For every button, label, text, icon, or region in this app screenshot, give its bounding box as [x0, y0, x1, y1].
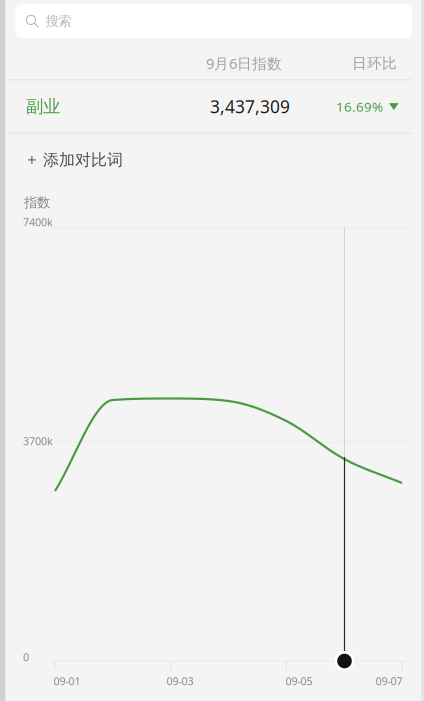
button[interactable]: 添加对比词	[28, 134, 412, 186]
staticText: 09-05	[285, 674, 312, 688]
staticText: 搜索	[45, 13, 71, 29]
staticText: 09-07	[375, 674, 402, 688]
staticText: 添加对比词	[43, 150, 123, 170]
staticText: 7400k	[23, 215, 53, 229]
staticText: 副业	[26, 96, 60, 117]
staticText: 3700k	[23, 434, 53, 448]
staticText: 16.69%	[336, 98, 383, 115]
staticText: 09-03	[166, 674, 193, 688]
staticText: 0	[23, 650, 29, 664]
staticText: 3,437,309	[210, 95, 290, 118]
staticText: 09-01	[53, 674, 80, 688]
staticText: 9月6日指数	[206, 53, 282, 73]
button[interactable]: 搜索	[15, 4, 412, 38]
staticText: 日环比	[352, 54, 397, 72]
staticText: 指数	[24, 194, 50, 211]
